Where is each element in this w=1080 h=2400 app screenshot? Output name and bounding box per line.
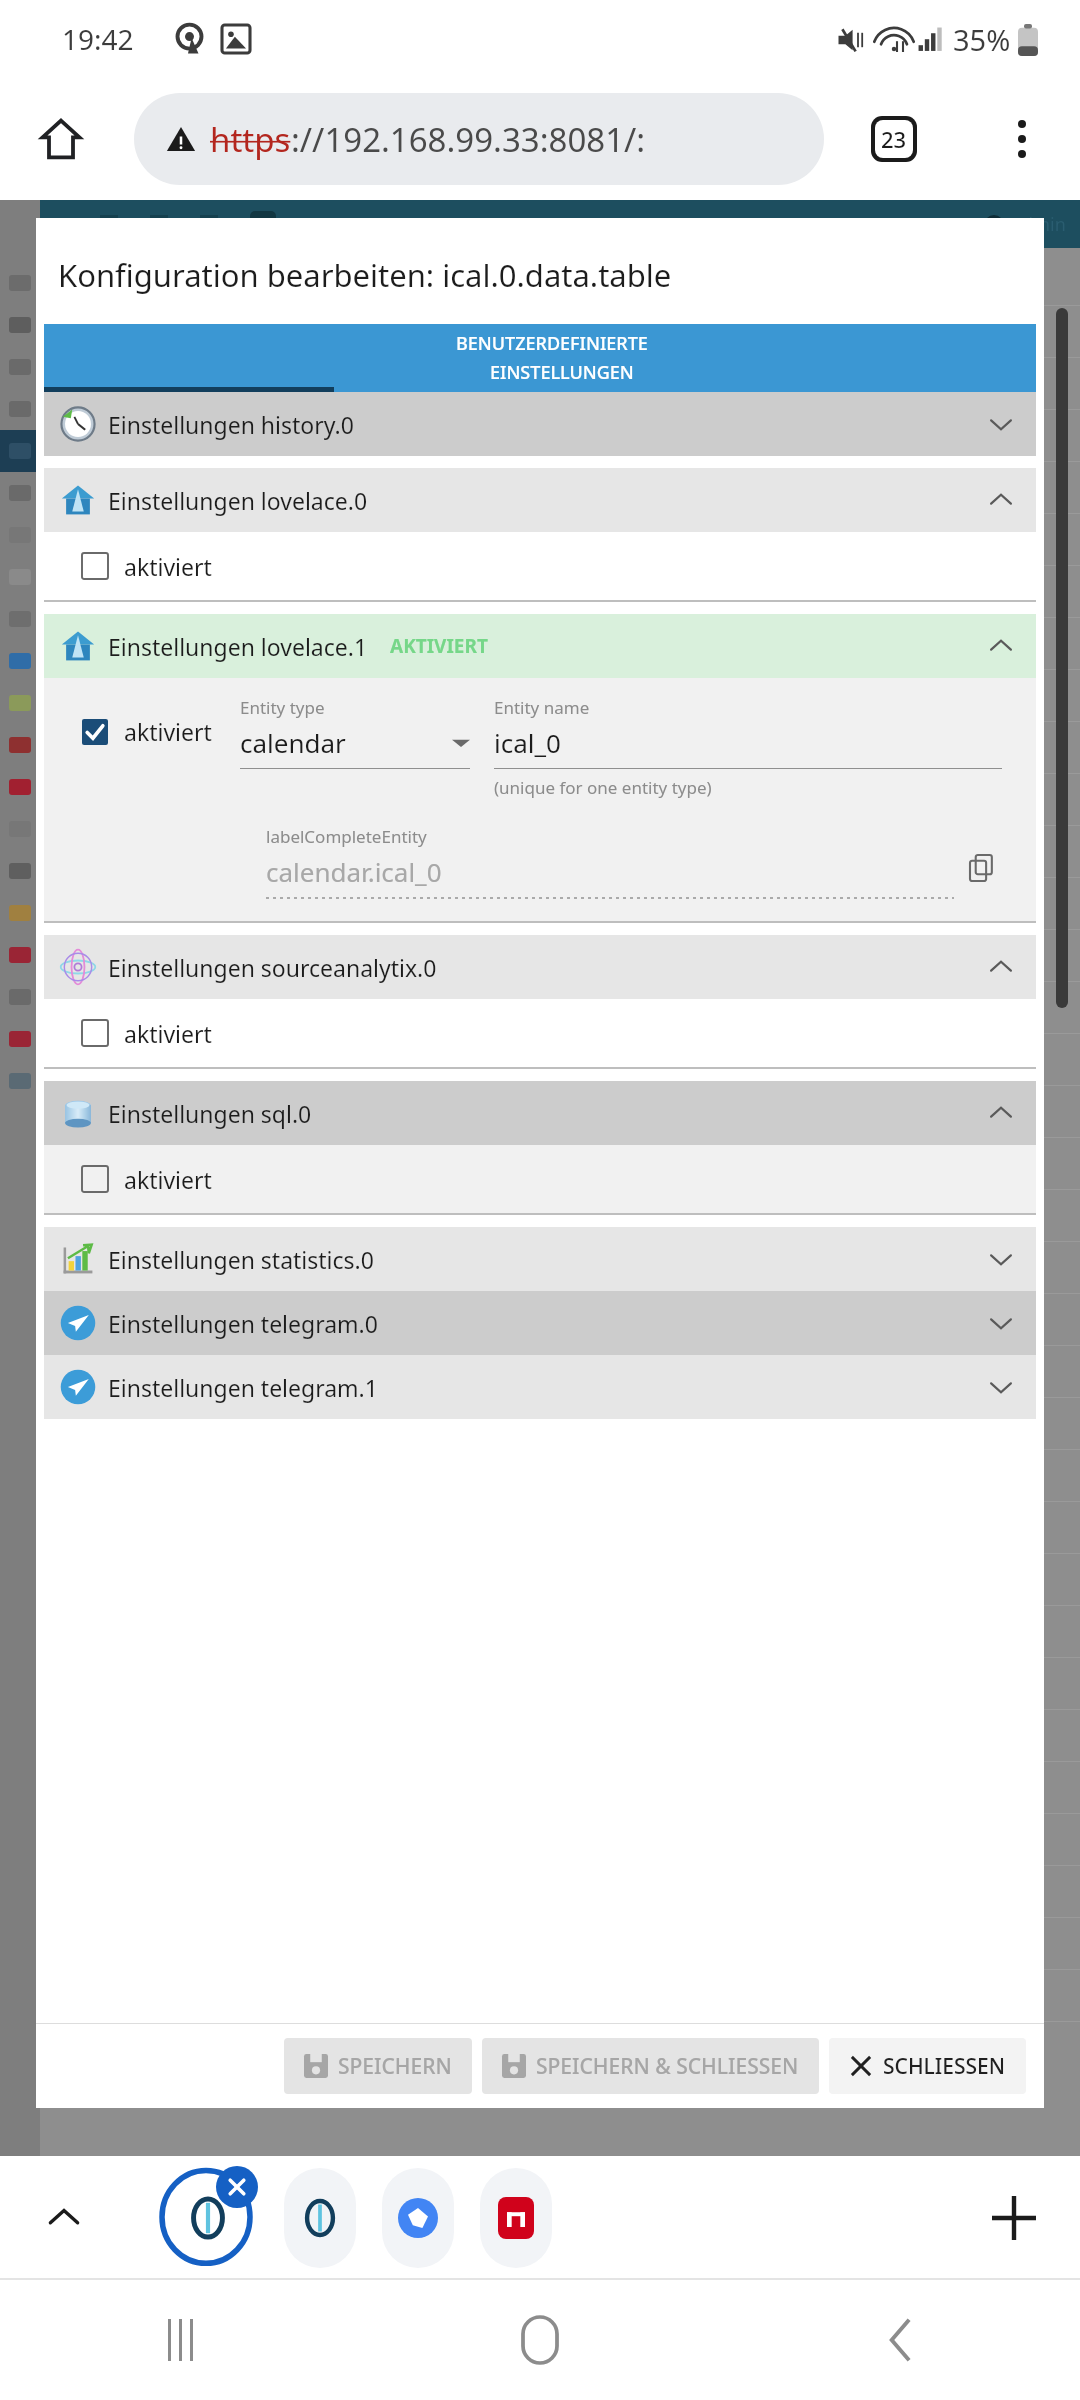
staticText: calendar.ical_0 xyxy=(266,854,442,889)
button[interactable]: More options xyxy=(986,103,1058,175)
button[interactable]: Tab xyxy=(382,2168,454,2268)
button[interactable]: aktiviert xyxy=(82,716,212,747)
staticText: ical_0 xyxy=(494,725,561,760)
button[interactable]: Home xyxy=(360,2280,720,2400)
button[interactable]: Einstellungen statistics.0 xyxy=(44,1227,1036,1291)
button[interactable]: Einstellungen lovelace.0 xyxy=(44,468,1036,532)
staticText: EINSTELLUNGEN xyxy=(490,360,634,385)
button[interactable]: SPEICHERN xyxy=(284,2038,472,2094)
staticText: Einstellungen sourceanalytix.0 xyxy=(108,952,437,983)
button[interactable]: Einstellungen telegram.1 xyxy=(44,1355,1036,1419)
button[interactable]: Tab xyxy=(284,2168,356,2268)
staticText: Entity type xyxy=(240,696,325,719)
button[interactable]: Entity name xyxy=(494,696,1002,799)
staticText: labelCompleteEntity xyxy=(266,825,427,848)
staticText: Konfiguration bearbeiten: ical.0.data.ta… xyxy=(58,254,672,296)
staticText: Einstellungen statistics.0 xyxy=(108,1244,374,1275)
button[interactable]: New tab xyxy=(974,2178,1054,2258)
staticText: 19:42 xyxy=(62,20,134,58)
staticText: calendar xyxy=(240,725,346,760)
button[interactable]: https xyxy=(134,93,824,185)
staticText: Einstellungen telegram.1 xyxy=(108,1372,378,1403)
button[interactable]: aktiviert xyxy=(44,1145,1036,1213)
staticText: ://192.168.99.33:8081/: xyxy=(291,117,646,162)
staticText: Einstellungen history.0 xyxy=(108,409,354,440)
staticText: AKTIVIERT xyxy=(390,633,488,659)
staticText: Einstellungen telegram.0 xyxy=(108,1308,378,1339)
button[interactable]: SCHLIESSEN xyxy=(829,2038,1026,2094)
staticText: admin xyxy=(1012,212,1066,237)
staticText: Entity name xyxy=(494,696,590,719)
button[interactable]: Einstellungen telegram.0 xyxy=(44,1291,1036,1355)
staticText: https xyxy=(210,117,291,162)
button[interactable]: Einstellungen lovelace.1 xyxy=(44,614,1036,678)
staticText: aktiviert xyxy=(124,551,212,582)
staticText: SCHLIESSEN xyxy=(883,2052,1006,2081)
button[interactable]: SPEICHERN & SCHLIESSEN xyxy=(482,2038,819,2094)
staticText: Einstellungen lovelace.1 xyxy=(108,631,368,662)
staticText: SPEICHERN xyxy=(338,2052,452,2081)
staticText: aktiviert xyxy=(124,1018,212,1049)
button[interactable]: aktiviert xyxy=(44,999,1036,1067)
button[interactable]: Einstellungen sourceanalytix.0 xyxy=(44,935,1036,999)
button[interactable]: Entity type xyxy=(240,696,470,769)
button[interactable]: Tabs: 23 xyxy=(858,103,930,175)
button[interactable]: Back xyxy=(720,2280,1080,2400)
button[interactable]: Close tab xyxy=(216,2166,258,2208)
button[interactable]: Current tab xyxy=(158,2164,258,2272)
button[interactable]: BENUTZERDEFINIERTE xyxy=(44,324,1036,392)
staticText: aktiviert xyxy=(124,1164,212,1195)
button[interactable]: Einstellungen sql.0 xyxy=(44,1081,1036,1145)
staticText: SPEICHERN & SCHLIESSEN xyxy=(536,2052,799,2081)
staticText: aktiviert xyxy=(124,716,212,747)
staticText: Einstellungen sql.0 xyxy=(108,1098,312,1129)
button[interactable]: Home xyxy=(26,104,96,174)
button[interactable]: Collapse xyxy=(26,2180,102,2256)
button[interactable]: Tab xyxy=(480,2168,552,2268)
button[interactable]: Recent apps xyxy=(0,2280,360,2400)
staticText: (unique for one entity type) xyxy=(494,776,712,799)
button[interactable]: Einstellungen history.0 xyxy=(44,392,1036,456)
staticText: BENUTZERDEFINIERTE xyxy=(456,331,648,356)
staticText: Einstellungen lovelace.0 xyxy=(108,485,368,516)
staticText: IOBROKER xyxy=(284,212,378,237)
staticText: 35% xyxy=(953,20,1011,59)
staticText: 23 xyxy=(881,124,907,154)
button[interactable]: aktiviert xyxy=(44,532,1036,600)
button[interactable]: Copy xyxy=(964,849,1002,887)
